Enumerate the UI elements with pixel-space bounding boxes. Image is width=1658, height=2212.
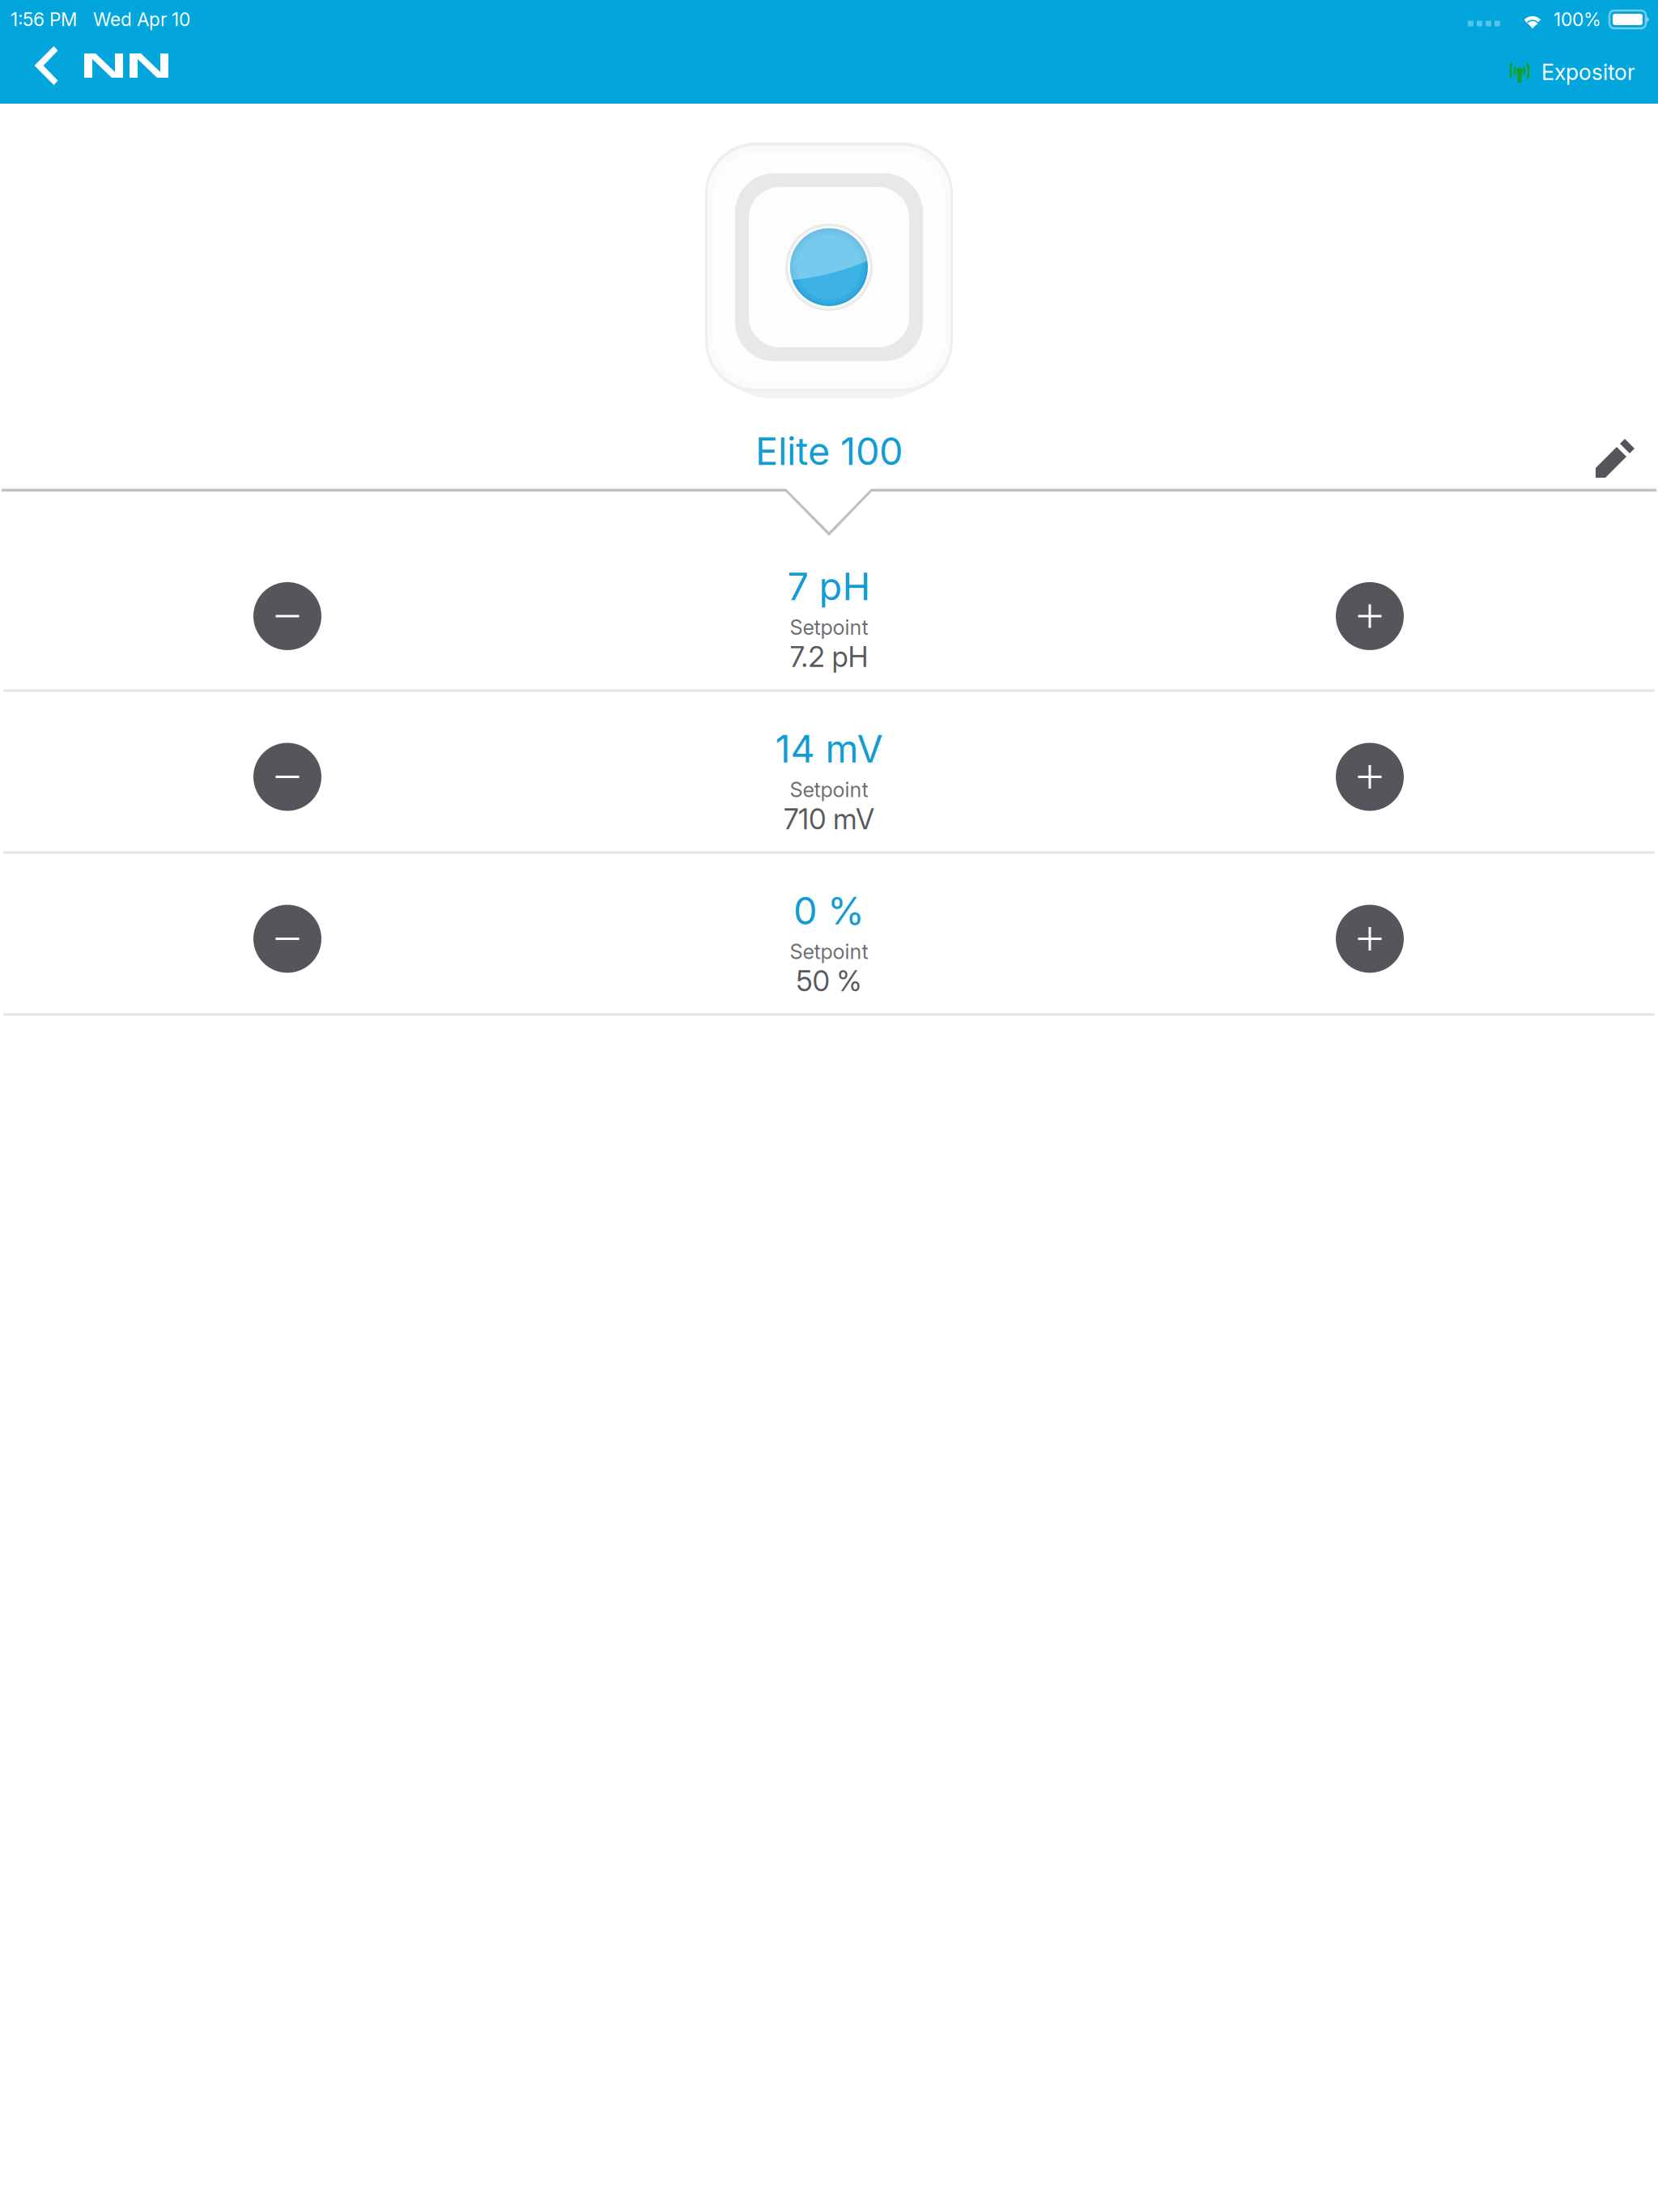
staticText: 7.2 pH	[790, 640, 868, 674]
button[interactable]: Decrease 7 pH	[231, 559, 344, 673]
staticText: 100%	[1554, 8, 1601, 31]
staticText: 50 %	[796, 964, 862, 998]
staticText: Setpoint	[790, 939, 868, 964]
staticText: 14 mV	[775, 726, 883, 772]
staticText: Expositor	[1541, 59, 1635, 85]
button[interactable]: Decrease 14 mV	[231, 720, 344, 834]
staticText: Setpoint	[790, 615, 868, 640]
staticText: 710 mV	[784, 802, 874, 836]
staticText: 7 pH	[787, 563, 871, 609]
staticText: Elite 100	[755, 428, 903, 474]
button[interactable]: Back	[20, 33, 72, 98]
staticText: 0 %	[793, 888, 865, 933]
button[interactable]: Increase 0 %	[1313, 882, 1426, 995]
staticText: 1:56 PM	[11, 8, 77, 31]
staticText: Wed Apr 10	[93, 8, 190, 31]
button[interactable]: Increase 14 mV	[1313, 720, 1426, 834]
button[interactable]: Edit name	[1571, 414, 1658, 503]
button[interactable]: Decrease 0 %	[231, 882, 344, 995]
button[interactable]: Increase 7 pH	[1313, 559, 1426, 673]
staticText: Setpoint	[790, 777, 868, 802]
button[interactable]: Expositor	[1508, 33, 1635, 98]
